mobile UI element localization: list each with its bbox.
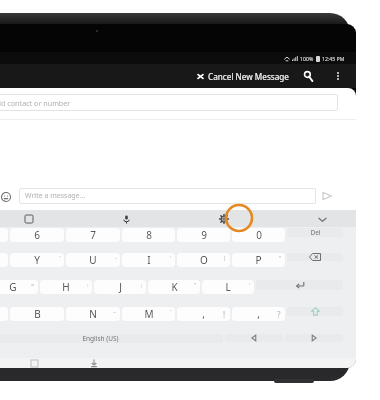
staticText: 0	[256, 228, 262, 242]
button[interactable]: Hide keyboard	[86, 358, 102, 368]
staticText: 9	[201, 228, 207, 242]
staticText: Write a message...	[25, 191, 86, 201]
button[interactable]: Cursor right	[285, 334, 343, 342]
staticText: Y	[34, 253, 40, 267]
staticText: K	[171, 280, 178, 294]
staticText: ?	[277, 309, 281, 320]
staticText: Del	[310, 228, 321, 237]
staticText: English (US)	[82, 334, 119, 343]
button[interactable]: B	[10, 307, 64, 321]
button[interactable]: Search	[298, 66, 318, 86]
staticText: L	[225, 280, 231, 294]
staticText: !	[223, 309, 226, 320]
staticText: "	[194, 281, 197, 288]
button[interactable]: Backspace	[287, 253, 343, 261]
staticText: =	[31, 281, 35, 288]
button[interactable]: I	[122, 253, 175, 267]
staticText: B	[34, 307, 41, 321]
button[interactable]: 7	[66, 228, 120, 242]
button[interactable]: English (US)	[0, 334, 223, 343]
button[interactable]: Y	[10, 253, 64, 267]
button[interactable]: Send	[316, 185, 338, 207]
staticText: U	[89, 253, 97, 267]
staticText: J	[119, 280, 122, 294]
staticText: G	[9, 280, 17, 294]
staticText: 100%	[300, 55, 314, 62]
staticText: 6	[34, 228, 40, 242]
button[interactable]: M	[122, 307, 175, 321]
staticText: ,	[202, 307, 205, 321]
staticText: O	[200, 253, 208, 267]
button[interactable]: U	[66, 253, 120, 267]
staticText: ,	[257, 307, 260, 321]
button[interactable]: Write a message...	[19, 188, 316, 204]
button[interactable]: N	[66, 307, 120, 321]
button[interactable]: 6	[10, 228, 64, 242]
button[interactable]: H	[40, 280, 92, 294]
button[interactable]: Enter	[256, 280, 343, 290]
button[interactable]: ,	[177, 307, 230, 321]
button[interactable]: 9	[177, 228, 230, 242]
staticText: |	[223, 254, 227, 261]
button[interactable]: Stickers	[21, 211, 37, 227]
button[interactable]: 8	[122, 228, 175, 242]
button[interactable]: P	[232, 253, 285, 267]
staticText: `	[170, 308, 172, 315]
button[interactable]: More options	[328, 66, 348, 86]
staticText: '	[249, 281, 251, 288]
button[interactable]: K	[148, 280, 200, 294]
button[interactable]: O	[177, 253, 230, 267]
staticText: Add contact or number	[0, 98, 71, 108]
staticText: "	[279, 254, 282, 261]
staticText: N	[89, 307, 97, 321]
button[interactable]: Voice input	[118, 211, 134, 227]
button[interactable]: ,	[232, 307, 285, 321]
staticText: P	[255, 253, 262, 267]
staticText: 7	[90, 228, 96, 242]
staticText: M	[144, 307, 154, 321]
staticText: -	[115, 254, 117, 261]
button[interactable]: Shift	[287, 307, 343, 316]
button[interactable]: 0	[232, 228, 285, 242]
button[interactable]: Recents	[26, 358, 42, 368]
button[interactable]: G	[0, 280, 38, 294]
staticText: 12:45 PM	[322, 55, 345, 62]
button[interactable]: Keyboard settings	[216, 211, 232, 227]
button[interactable]: Emoji	[0, 187, 15, 206]
staticText: :	[87, 281, 89, 288]
button[interactable]: J	[94, 280, 146, 294]
staticText: ~	[113, 308, 117, 315]
staticText: '	[170, 254, 172, 261]
button[interactable]: Cursor left	[225, 334, 283, 342]
button[interactable]: L	[202, 280, 254, 294]
button[interactable]: Add contact or number	[0, 94, 338, 111]
staticText: `	[59, 254, 61, 261]
button[interactable]: Collapse keyboard	[314, 211, 330, 227]
staticText: Cancel New Message	[208, 71, 289, 82]
staticText: I	[147, 253, 151, 267]
button[interactable]: Del	[287, 228, 343, 237]
button[interactable]: Cancel New Message	[194, 68, 292, 85]
staticText: ;	[141, 281, 143, 288]
staticText: H	[62, 280, 70, 294]
staticText: 8	[146, 228, 152, 242]
